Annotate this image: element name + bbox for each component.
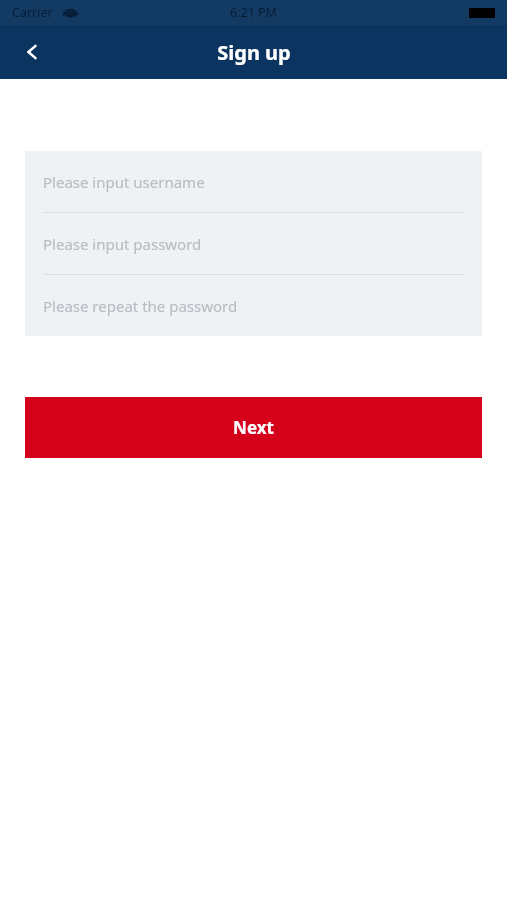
button[interactable]: Please input username	[25, 151, 482, 212]
staticText: Please repeat the password	[43, 296, 238, 316]
staticText: Carrier	[12, 4, 53, 21]
staticText: Please input username	[43, 172, 205, 192]
staticText: Sign up	[217, 39, 291, 66]
button[interactable]: Next	[25, 397, 482, 458]
staticText: Next	[233, 416, 274, 439]
button[interactable]: Back	[0, 25, 64, 79]
staticText: 6:21 PM	[230, 4, 277, 21]
staticText: Please input password	[43, 234, 202, 254]
button[interactable]: Please repeat the password	[25, 275, 482, 336]
button[interactable]: Please input password	[25, 213, 482, 274]
